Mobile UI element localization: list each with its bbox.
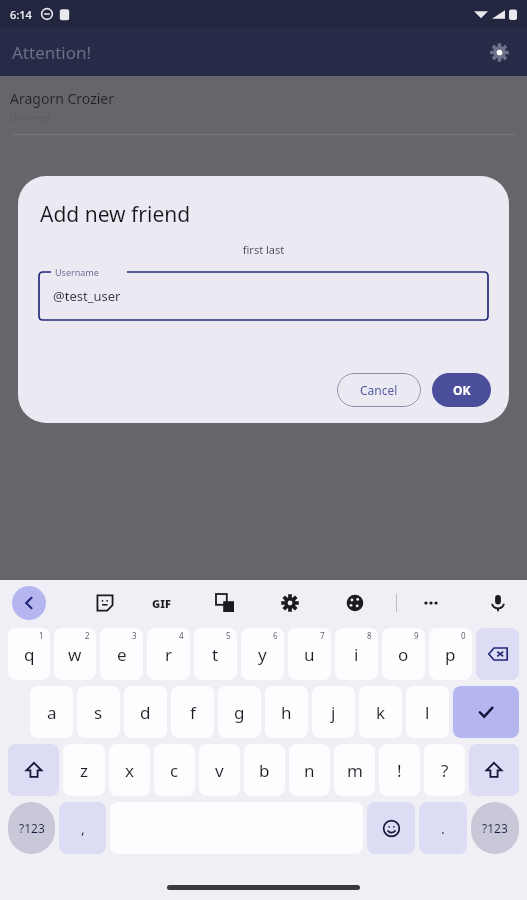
staticText: v [215, 759, 224, 782]
staticText: Username [55, 266, 99, 278]
staticText: 7 [320, 630, 325, 641]
button[interactable]: ?123 [8, 802, 55, 854]
staticText: n [304, 759, 315, 782]
button[interactable]: Back [12, 586, 46, 620]
staticText: 3 [132, 630, 137, 641]
staticText: b [259, 759, 270, 782]
button[interactable]: GIF [144, 586, 178, 620]
button[interactable]: a [30, 686, 73, 738]
button[interactable]: r [147, 628, 190, 680]
button[interactable]: More [414, 586, 448, 620]
button[interactable]: Settings [479, 32, 519, 72]
staticText: y [258, 643, 267, 666]
staticText: c [170, 759, 179, 782]
staticText: 8 [367, 630, 372, 641]
staticText: GIF [152, 596, 171, 611]
staticText: 9 [414, 630, 419, 641]
staticText: Aragorn Crozier [10, 89, 115, 108]
staticText: f [190, 701, 196, 724]
staticText: e [117, 643, 127, 666]
button[interactable]: Shift [469, 744, 519, 796]
staticText: k [376, 701, 386, 724]
button[interactable]: i [335, 628, 378, 680]
button[interactable]: Backspace [476, 628, 519, 680]
staticText: @test_user [53, 287, 121, 305]
button[interactable]: q [8, 628, 50, 680]
button[interactable]: j [312, 686, 355, 738]
button[interactable]: p [429, 628, 472, 680]
staticText: 6 [273, 630, 278, 641]
staticText: i [354, 643, 359, 666]
button[interactable]: OK [432, 373, 491, 407]
staticText: x [125, 759, 134, 782]
staticText: 0 [461, 630, 466, 641]
button[interactable]: s [77, 686, 120, 738]
button[interactable]: Theme [338, 586, 372, 620]
staticText: r [165, 643, 173, 666]
staticText: 6:14 [10, 7, 32, 22]
button[interactable]: Voice input [481, 586, 515, 620]
button[interactable]: z [63, 744, 105, 796]
button[interactable]: Translate [208, 586, 242, 620]
staticText: ? [441, 759, 449, 782]
button[interactable]: . [419, 802, 467, 854]
button[interactable]: v [199, 744, 240, 796]
staticText: 1 [39, 630, 44, 641]
staticText: h [281, 701, 292, 724]
staticText: Attention! [12, 41, 92, 64]
staticText: Cancel [360, 382, 398, 398]
staticText: u [304, 643, 315, 666]
button[interactable]: n [289, 744, 330, 796]
button[interactable]: Username [39, 272, 488, 320]
button[interactable]: , [59, 802, 106, 854]
button[interactable]: Enter [453, 686, 519, 738]
button[interactable]: h [265, 686, 308, 738]
button[interactable]: f [171, 686, 214, 738]
staticText: g [234, 701, 245, 724]
button[interactable]: ! [379, 744, 420, 796]
button[interactable]: Settings [273, 586, 307, 620]
staticText: 2 [85, 630, 90, 641]
staticText: OK [453, 382, 471, 398]
staticText: j [331, 701, 336, 724]
button[interactable]: c [154, 744, 195, 796]
staticText: t [212, 643, 219, 666]
button[interactable]: l [406, 686, 449, 738]
button[interactable]: Shift [8, 744, 59, 796]
button[interactable]: y [241, 628, 284, 680]
button[interactable]: o [382, 628, 425, 680]
button[interactable]: u [288, 628, 331, 680]
staticText: 4 [179, 630, 184, 641]
staticText: q [24, 643, 35, 666]
staticText: p [445, 643, 456, 666]
button[interactable]: Cancel [337, 373, 421, 407]
button[interactable]: ?123 [471, 802, 519, 854]
staticText: , [81, 819, 85, 838]
button[interactable]: Emoji [367, 802, 415, 854]
staticText: . [441, 819, 445, 838]
button[interactable]: d [124, 686, 167, 738]
button[interactable]: ? [424, 744, 465, 796]
staticText: w [68, 643, 82, 666]
button[interactable]: x [109, 744, 150, 796]
button[interactable]: Sticker [88, 586, 122, 620]
button[interactable]: m [334, 744, 375, 796]
staticText: l [425, 701, 430, 724]
staticText: a [47, 701, 57, 724]
staticText: s [94, 701, 103, 724]
button[interactable]: b [244, 744, 285, 796]
staticText: z [80, 759, 88, 782]
button[interactable]: w [54, 628, 96, 680]
button[interactable]: t [194, 628, 237, 680]
staticText: ?123 [19, 820, 45, 836]
staticText: m [347, 759, 363, 782]
staticText: ?123 [482, 820, 508, 836]
button[interactable]: e [100, 628, 143, 680]
staticText: d [140, 701, 151, 724]
button[interactable]: k [359, 686, 402, 738]
staticText: Add new friend [40, 200, 191, 229]
button[interactable]: g [218, 686, 261, 738]
staticText: first last [18, 242, 509, 257]
